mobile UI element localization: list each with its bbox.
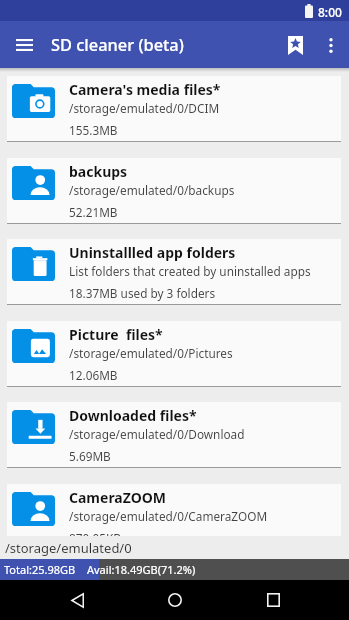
- staticText: CameraZOOM: [69, 488, 167, 507]
- staticText: 5.69MB: [69, 448, 111, 464]
- staticText: 12.06MB: [69, 367, 118, 383]
- staticText: 18.37MB used by 3 folders: [69, 285, 216, 301]
- button[interactable]: Recent apps: [248, 584, 298, 616]
- staticText: backups: [69, 162, 128, 181]
- button[interactable]: CameraZOOM: [7, 484, 341, 536]
- button[interactable]: Open navigation drawer: [8, 32, 40, 58]
- button[interactable]: Camera's media files*: [7, 76, 341, 142]
- staticText: 870.05KB: [69, 530, 121, 536]
- staticText: /storage/emulated/0/Pictures: [69, 345, 233, 361]
- staticText: 8:00: [318, 4, 342, 20]
- staticText: SD cleaner (beta): [51, 33, 184, 55]
- button[interactable]: backups: [7, 158, 341, 224]
- button[interactable]: Home: [150, 584, 200, 616]
- button[interactable]: Picture files*: [7, 321, 341, 387]
- staticText: Downloaded files*: [69, 406, 197, 425]
- staticText: /storage/emulated/0/DCIM: [69, 100, 220, 116]
- button[interactable]: Uninstallled app folders: [7, 239, 341, 305]
- button[interactable]: Back: [52, 584, 102, 616]
- button[interactable]: Bookmarks: [280, 30, 310, 60]
- staticText: /storage/emulated/0/CameraZOOM: [69, 508, 268, 524]
- staticText: 52.21MB: [69, 204, 118, 220]
- button[interactable]: More options: [316, 30, 345, 60]
- staticText: /storage/emulated/0: [5, 539, 132, 557]
- staticText: Avail:18.49GB(71.2%): [87, 562, 196, 577]
- staticText: Camera's media files*: [69, 80, 221, 99]
- staticText: Total:25.98GB: [4, 562, 76, 577]
- button[interactable]: Downloaded files*: [7, 402, 341, 468]
- staticText: /storage/emulated/0/Download: [69, 426, 245, 442]
- staticText: 155.3MB: [69, 122, 118, 138]
- staticText: Picture files*: [69, 325, 163, 344]
- staticText: /storage/emulated/0/backups: [69, 182, 235, 198]
- staticText: List folders that created by uninstalled…: [69, 263, 311, 279]
- staticText: Uninstallled app folders: [69, 243, 236, 262]
